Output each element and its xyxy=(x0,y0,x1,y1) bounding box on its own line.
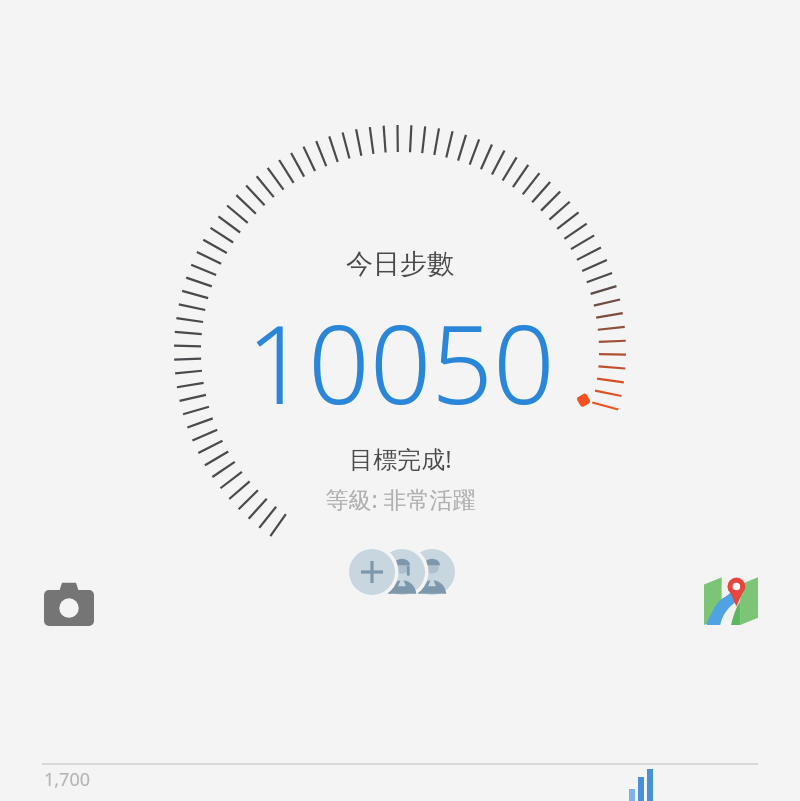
staticText: 1,700 xyxy=(44,767,91,792)
button[interactable]: Camera xyxy=(44,580,94,626)
staticText: 目標完成! xyxy=(349,442,452,475)
button[interactable]: Add friends xyxy=(348,548,456,596)
staticText: 等級: 非常活躍 xyxy=(325,483,476,514)
staticText: 今日步數 xyxy=(346,247,454,281)
staticText: 10050 xyxy=(246,289,555,436)
button[interactable]: Maps xyxy=(704,573,758,625)
